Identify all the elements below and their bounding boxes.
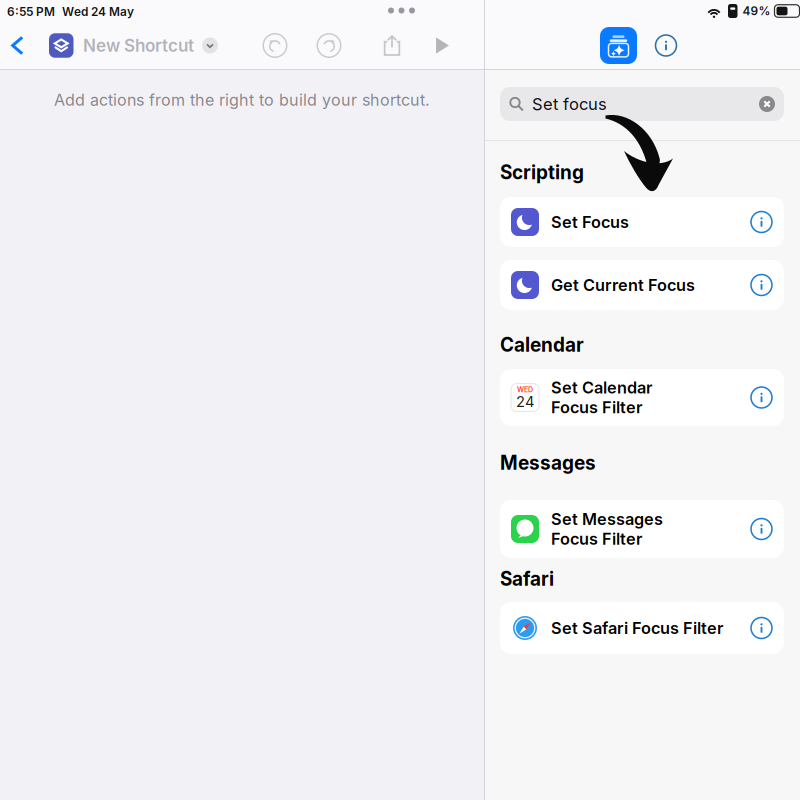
staticText: Set Focus xyxy=(551,212,629,232)
staticText: 49% xyxy=(742,4,770,18)
staticText: Set Calendar xyxy=(551,378,652,397)
button[interactable]: Run xyxy=(424,22,460,69)
staticText: Set Messages xyxy=(551,509,663,529)
staticText: Wed 24 May xyxy=(62,5,134,19)
button[interactable]: Redo xyxy=(309,22,349,69)
staticText: Scripting xyxy=(500,161,584,184)
staticText: Get Current Focus xyxy=(551,275,695,295)
staticText: 6:55 PM xyxy=(7,5,55,19)
button[interactable]: Action library xyxy=(600,27,637,64)
staticText: Focus Filter xyxy=(551,529,642,549)
button[interactable]: Set Focus xyxy=(500,197,784,247)
button[interactable]: Undo xyxy=(255,22,295,69)
button[interactable]: Back xyxy=(1,22,35,69)
staticText: Add actions from the right to build your… xyxy=(54,90,430,110)
staticText: Focus Filter xyxy=(551,397,642,417)
staticText: 24 xyxy=(516,393,534,410)
button[interactable]: Clear search xyxy=(759,96,775,112)
staticText: Set focus xyxy=(532,94,607,114)
staticText: Calendar xyxy=(500,333,584,356)
staticText: Safari xyxy=(500,567,554,590)
staticText: Set Safari Focus Filter xyxy=(551,618,723,638)
button[interactable]: Set Messages xyxy=(500,500,784,558)
staticText: New Shortcut xyxy=(83,35,194,56)
button[interactable]: Set Safari Focus Filter xyxy=(500,602,784,654)
button[interactable]: Share xyxy=(372,22,412,69)
button[interactable]: Get Current Focus xyxy=(500,260,784,310)
button[interactable]: Info xyxy=(655,35,676,56)
button[interactable]: WED xyxy=(500,369,784,426)
staticText: WED xyxy=(517,385,533,394)
button[interactable]: New Shortcut xyxy=(83,23,218,67)
staticText: Messages xyxy=(500,451,596,474)
